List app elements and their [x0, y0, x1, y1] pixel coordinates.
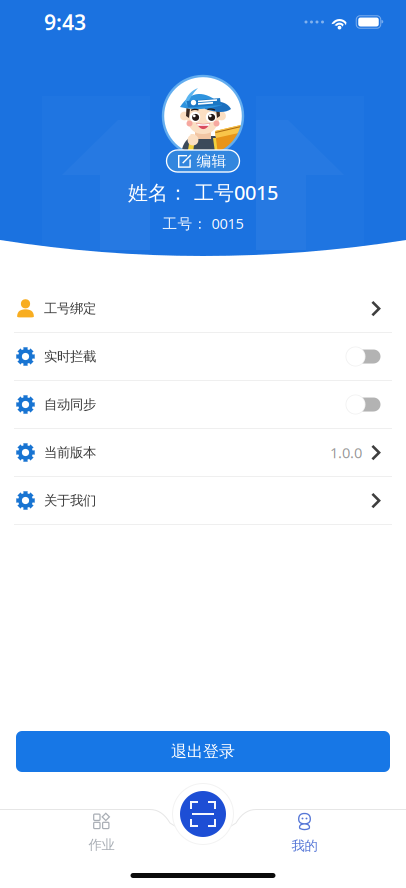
staticText: 编辑	[196, 152, 226, 170]
staticText: 自动同步	[44, 396, 96, 413]
staticText: 我的	[291, 837, 317, 854]
button[interactable]: 编辑	[166, 150, 239, 172]
staticText: 退出登录	[171, 742, 235, 761]
staticText: 工号： 0015	[162, 214, 243, 233]
button[interactable]: 作业	[0, 805, 203, 888]
staticText: 工号绑定	[44, 300, 96, 317]
staticText: 实时拦截	[44, 348, 96, 365]
button[interactable]: 自动同步	[0, 381, 406, 429]
button[interactable]: 工号绑定	[0, 285, 406, 333]
staticText: 1.0.0	[330, 443, 362, 462]
button[interactable]: 我的	[203, 805, 406, 888]
staticText: 关于我们	[44, 492, 96, 509]
button[interactable]: 当前版本	[0, 429, 406, 477]
button[interactable]: 退出登录	[16, 731, 390, 772]
button[interactable]: Scan	[172, 783, 234, 845]
staticText: 姓名： 工号0015	[128, 179, 278, 206]
staticText: 作业	[88, 836, 114, 853]
staticText: 当前版本	[44, 444, 96, 461]
button[interactable]: 关于我们	[0, 477, 406, 525]
staticText: 9:43	[44, 8, 86, 36]
button[interactable]: 实时拦截	[0, 333, 406, 381]
